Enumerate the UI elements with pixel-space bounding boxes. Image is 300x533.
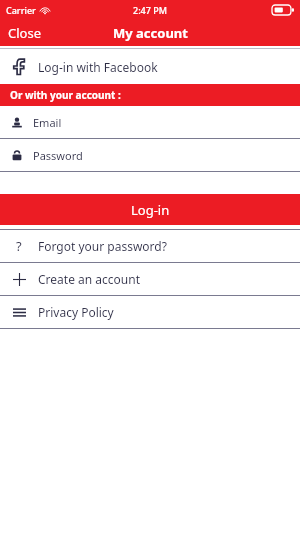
staticText: Carrier: [6, 4, 36, 16]
staticText: My account: [113, 24, 188, 42]
button[interactable]: Email: [0, 106, 300, 138]
other: Email: [12, 117, 22, 128]
other: Create an account: [13, 273, 26, 286]
other: Privacy Policy: [13, 308, 26, 317]
button[interactable]: Forgot your password: [0, 230, 300, 262]
button[interactable]: Close: [0, 20, 49, 46]
staticText: Privacy Policy: [38, 304, 114, 320]
staticText: 2:47 PM: [133, 4, 167, 16]
staticText: Create an account: [38, 271, 140, 287]
other: Forgot your password: [16, 237, 22, 255]
staticText: Log-in with Facebook: [38, 59, 158, 75]
staticText: Forgot your password?: [38, 238, 167, 254]
staticText: Email: [33, 115, 62, 130]
button[interactable]: Log-in with Facebook: [0, 49, 300, 84]
button[interactable]: Privacy Policy: [0, 296, 300, 328]
staticText: ?: [16, 237, 22, 255]
button[interactable]: Create an account: [0, 263, 300, 295]
staticText: Password: [33, 148, 83, 163]
other: Password: [12, 150, 22, 161]
button[interactable]: Password: [0, 139, 300, 171]
staticText: Or with your account :: [10, 88, 121, 102]
staticText: Log-in: [131, 201, 170, 219]
staticText: Close: [8, 24, 41, 42]
button[interactable]: Log-in: [0, 194, 300, 225]
